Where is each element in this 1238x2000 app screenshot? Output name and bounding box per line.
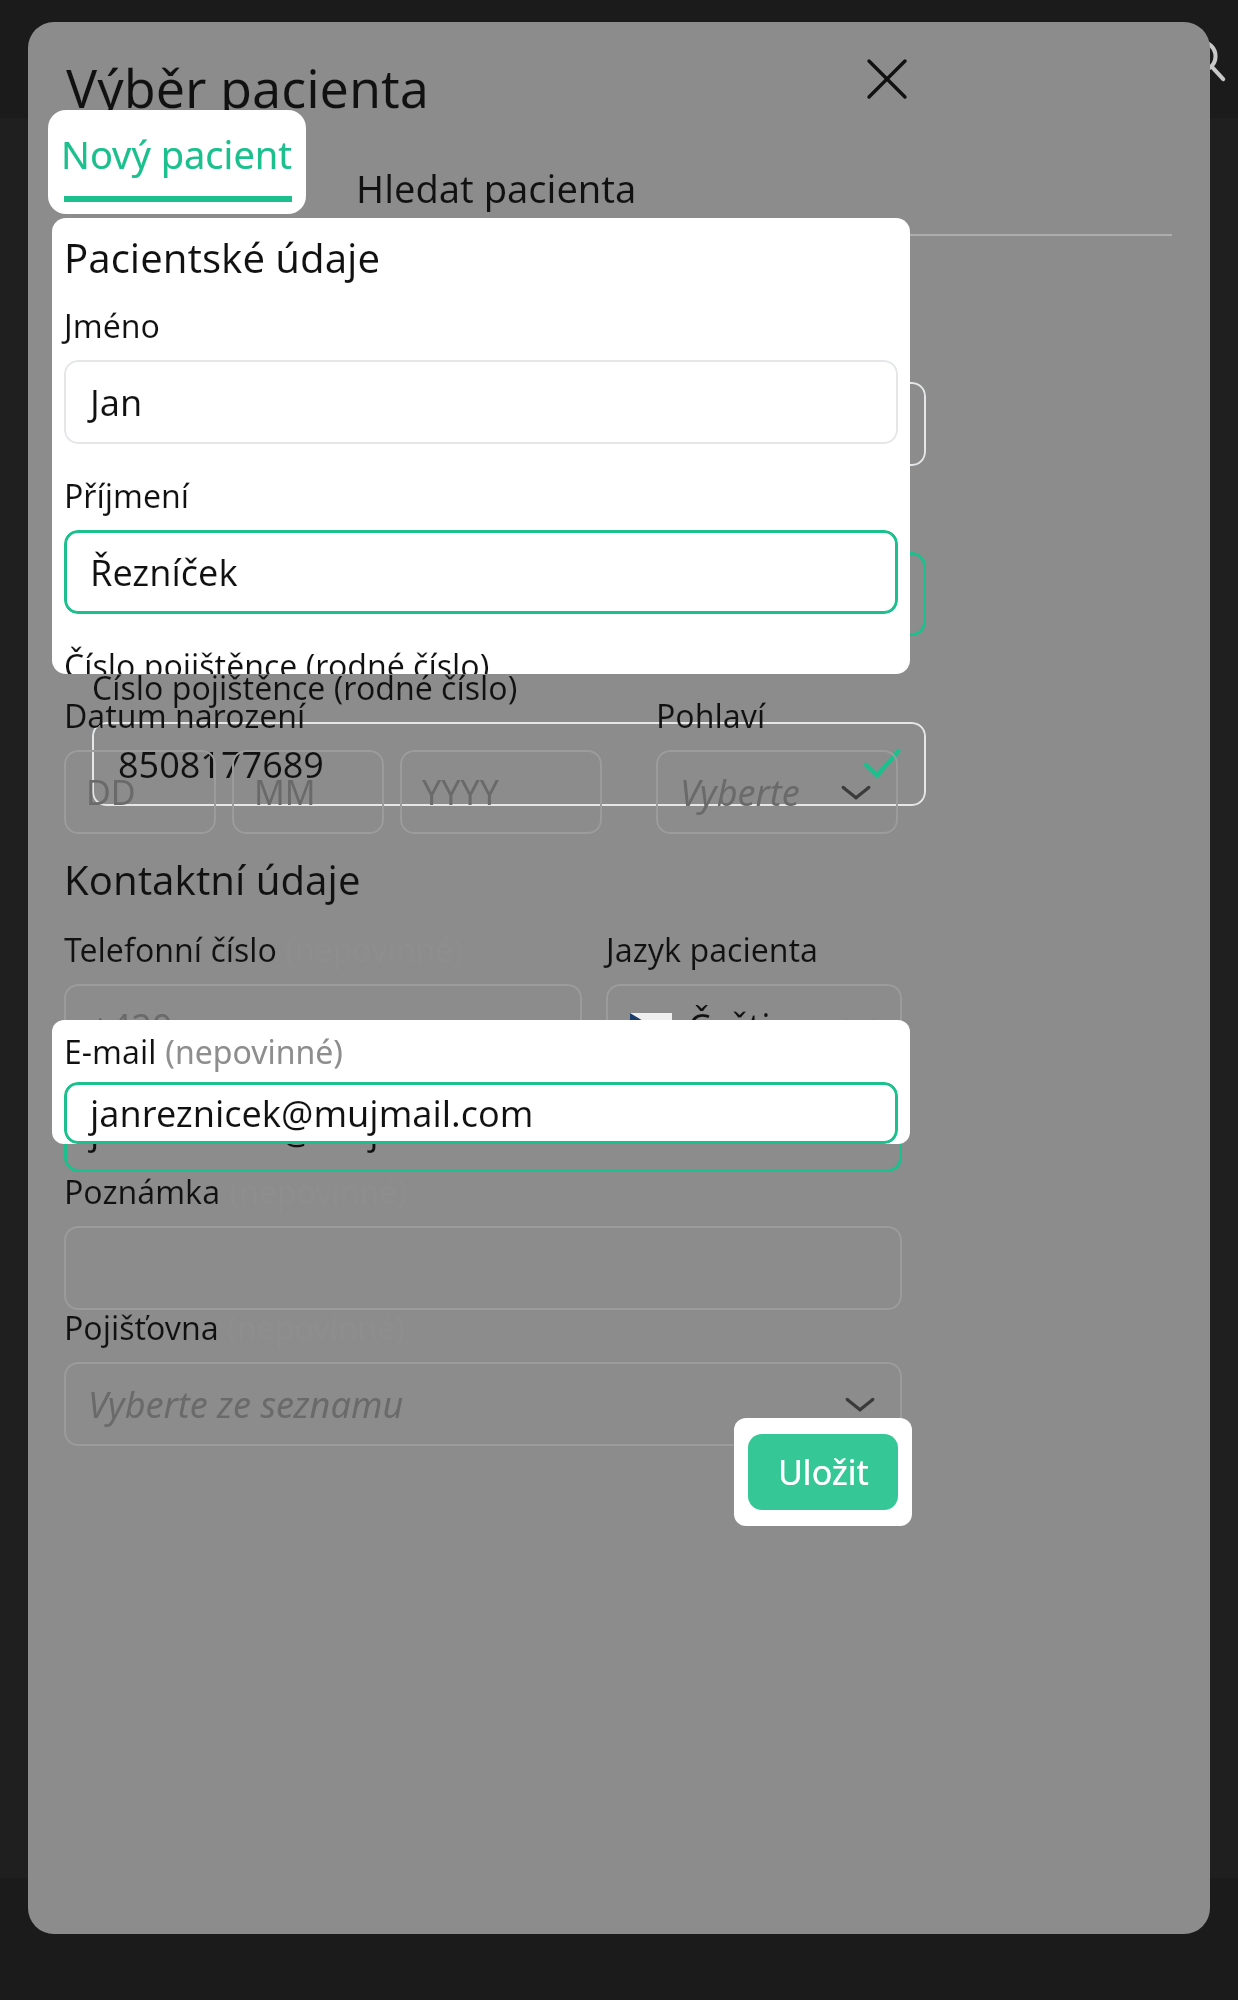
- staticText: Vyberte ze seznamu: [88, 1380, 404, 1429]
- staticText: Vyberte: [680, 768, 800, 817]
- button[interactable]: Jan: [64, 360, 898, 444]
- button[interactable]: Vyberte: [656, 750, 898, 834]
- staticText: Čeština: [688, 1002, 814, 1051]
- staticText: MM: [254, 769, 316, 815]
- staticText: Číslo pojištěnce (rodné číslo): [64, 644, 490, 674]
- button[interactable]: janreznicek@mujmail.com: [64, 1088, 902, 1172]
- staticText: DD: [86, 769, 136, 815]
- staticText: (nepovinné): [157, 1032, 343, 1076]
- staticText: Jan: [90, 378, 143, 427]
- staticText: Nový pacient: [61, 128, 293, 180]
- staticText: Výběr pacienta: [66, 52, 429, 123]
- button[interactable]: Close: [848, 40, 926, 118]
- button[interactable]: Search: [1180, 36, 1228, 84]
- staticText: Poznámka: [64, 1170, 221, 1214]
- staticText: Číslo pojištěnce (rodné číslo): [92, 666, 518, 710]
- staticText: janreznicek@mujmail.com: [90, 1106, 534, 1155]
- staticText: 8508177689: [118, 740, 324, 789]
- staticText: Datum narození: [64, 694, 306, 738]
- staticText: Uložit: [779, 1447, 870, 1493]
- button[interactable]: Pacientské údaje: [52, 218, 910, 674]
- staticText: Uložit: [778, 1449, 869, 1495]
- button[interactable]: [64, 1226, 902, 1310]
- staticText: Jméno: [92, 326, 188, 370]
- staticText: janreznicek@mujmail.com: [90, 1089, 534, 1138]
- button[interactable]: janreznicek@mujmail.com: [64, 1082, 898, 1144]
- button[interactable]: 8508177689: [92, 722, 926, 806]
- button[interactable]: Uložit: [748, 1434, 898, 1510]
- button[interactable]: Jan: [92, 382, 926, 466]
- button[interactable]: +420: [64, 984, 582, 1068]
- staticText: YYYY: [422, 769, 499, 815]
- staticText: Telefonní číslo: [64, 928, 277, 972]
- staticText: Nový pacient: [66, 162, 298, 214]
- staticText: Řezníček: [118, 570, 266, 619]
- staticText: Příjmení: [64, 474, 190, 518]
- staticText: (nepovinné): [219, 1306, 405, 1350]
- staticText: E-mail: [64, 1032, 157, 1076]
- staticText: Hledat pacienta: [356, 162, 637, 214]
- staticText: Pojišťovna: [64, 1306, 219, 1350]
- button[interactable]: MM: [232, 750, 384, 834]
- staticText: Kontaktní údaje: [64, 852, 361, 906]
- button[interactable]: Vyberte ze seznamu: [64, 1362, 902, 1446]
- button[interactable]: E-mail: [52, 1020, 910, 1144]
- button[interactable]: YYYY: [400, 750, 602, 834]
- button[interactable]: DD: [64, 750, 216, 834]
- staticText: +420: [90, 1002, 173, 1051]
- button[interactable]: Řezníček: [64, 530, 898, 614]
- staticText: Pacientské údaje: [92, 252, 408, 306]
- staticText: (nepovinné): [221, 1170, 407, 1214]
- button[interactable]: Uložit: [746, 1432, 902, 1508]
- staticText: Pacientské údaje: [64, 230, 380, 284]
- staticText: Řezníček: [90, 548, 238, 597]
- button[interactable]: Nový pacient: [66, 140, 298, 236]
- button[interactable]: Hledat pacienta: [356, 140, 637, 236]
- staticText: Jazyk pacienta: [606, 928, 819, 972]
- button[interactable]: Nový pacient: [48, 110, 306, 214]
- staticText: Jméno: [64, 304, 160, 348]
- staticText: Příjmení: [92, 496, 218, 540]
- staticText: Jan: [118, 400, 171, 449]
- staticText: (nepovinné): [157, 1030, 343, 1074]
- button[interactable]: Řezníček: [92, 552, 926, 636]
- staticText: Pohlaví: [656, 694, 766, 738]
- staticText: E-mail: [64, 1030, 157, 1074]
- button[interactable]: Čeština: [606, 984, 902, 1068]
